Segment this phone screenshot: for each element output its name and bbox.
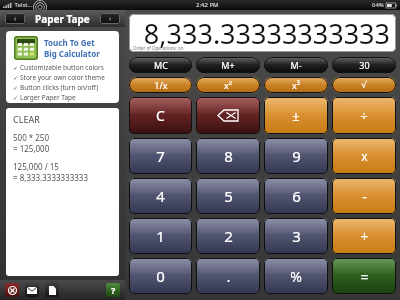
staticText: Customizable button colors	[20, 63, 104, 72]
button[interactable]: Help	[106, 283, 120, 297]
staticText: 8	[224, 146, 233, 166]
staticText: .	[226, 266, 231, 286]
button[interactable]: x²	[196, 77, 260, 93]
staticText: ›	[109, 14, 112, 24]
button[interactable]: 4	[129, 178, 192, 214]
button[interactable]: C	[129, 97, 192, 134]
staticText: Store your own color theme	[20, 73, 105, 82]
button[interactable]: Backspace	[196, 97, 260, 134]
staticText: 1/x	[154, 79, 168, 91]
staticText: 8,333.33333333333	[143, 15, 390, 52]
staticText: 4	[156, 186, 165, 206]
staticText: 2:42 PM	[196, 1, 219, 9]
staticText: ?	[111, 284, 116, 296]
staticText: %	[290, 267, 302, 286]
staticText: M+	[221, 59, 235, 71]
button[interactable]: x³	[264, 77, 328, 93]
staticText: x³	[292, 79, 300, 91]
button[interactable]: =	[332, 258, 396, 294]
staticText: +	[360, 227, 369, 246]
staticText: M-	[290, 59, 302, 71]
staticText: 1	[156, 226, 165, 246]
staticText: ÷	[360, 107, 368, 125]
button[interactable]: +	[332, 218, 396, 254]
button[interactable]: 3	[264, 218, 328, 254]
staticText: C	[156, 106, 165, 125]
button[interactable]: 6	[264, 178, 328, 214]
button[interactable]: 5	[196, 178, 260, 214]
button[interactable]: 30	[332, 57, 396, 73]
staticText: 64%	[372, 1, 384, 9]
staticText: CLEAR	[13, 113, 40, 125]
staticText: ✓	[13, 74, 20, 82]
button[interactable]: 9	[264, 138, 328, 174]
staticText: Big Calculator	[44, 48, 100, 59]
button[interactable]: %	[264, 258, 328, 294]
button[interactable]: 0	[129, 258, 192, 294]
button[interactable]: Previous	[5, 13, 25, 24]
staticText: x²	[224, 79, 232, 91]
staticText: Touch To Get	[44, 37, 95, 48]
button[interactable]: ÷	[332, 97, 396, 134]
button[interactable]: Touch To Get	[6, 31, 119, 103]
staticText: √	[361, 80, 367, 90]
staticText: Paper Tape	[35, 12, 90, 26]
button[interactable]: .	[196, 258, 260, 294]
button[interactable]: M+	[196, 57, 260, 73]
button[interactable]: CLEAR	[6, 108, 119, 276]
button[interactable]: √	[332, 77, 396, 93]
staticText: ✓	[13, 84, 20, 92]
staticText: ✓	[13, 64, 20, 72]
button[interactable]: Email tape	[25, 283, 39, 297]
staticText: -	[362, 187, 367, 206]
staticText: 125,000 / 15	[13, 161, 59, 172]
staticText: 7	[156, 146, 165, 166]
button[interactable]: 1/x	[129, 77, 192, 93]
button[interactable]: Clear tape	[5, 283, 19, 297]
staticText: 0	[156, 266, 165, 286]
staticText: = 8,333.3333333333	[13, 172, 89, 183]
button[interactable]: 8	[196, 138, 260, 174]
button[interactable]: M-	[264, 57, 328, 73]
button[interactable]: Copy tape	[45, 283, 59, 297]
staticText: ✓	[13, 94, 20, 102]
button[interactable]: 2	[196, 218, 260, 254]
staticText: 30	[359, 59, 370, 71]
button[interactable]: 7	[129, 138, 192, 174]
staticText: Telst...	[13, 1, 33, 9]
staticText: 2	[224, 226, 233, 246]
button[interactable]: 1	[129, 218, 192, 254]
staticText: 3	[292, 226, 301, 246]
button[interactable]: ±	[264, 97, 328, 134]
staticText: 6	[292, 186, 301, 206]
staticText: ±	[292, 107, 300, 125]
staticText: = 125,000	[13, 143, 50, 154]
staticText: Order of Operations: on	[133, 45, 184, 51]
staticText: 9	[292, 146, 301, 166]
staticText: MC	[154, 59, 168, 71]
staticText: 500 * 250	[13, 132, 50, 143]
button[interactable]: MC	[129, 57, 192, 73]
staticText: x	[361, 148, 368, 164]
staticText: Button clicks (turn on/off)	[20, 83, 99, 92]
button[interactable]: -	[332, 178, 396, 214]
staticText: ‹	[14, 14, 17, 24]
staticText: 5	[224, 186, 233, 206]
staticText: =	[360, 267, 369, 286]
button[interactable]: x	[332, 138, 396, 174]
button[interactable]: Next	[100, 13, 120, 24]
staticText: Larger Paper Tape	[20, 93, 76, 102]
